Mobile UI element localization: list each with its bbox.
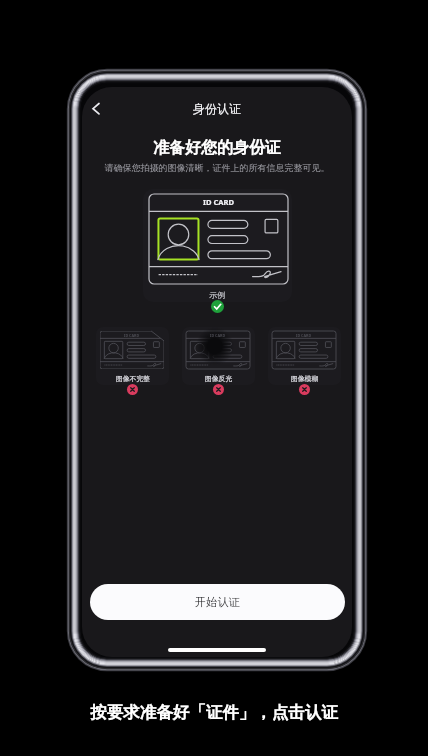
button[interactable]: ID CARD (182, 327, 255, 385)
button[interactable]: Back (88, 100, 105, 117)
staticText: ID CARD (203, 197, 235, 207)
staticText: 身份认证 (82, 101, 352, 116)
staticText: 图像模糊 (291, 374, 319, 383)
staticText: 图像不完整 (116, 374, 150, 383)
staticText: 请确保您拍摄的图像清晰，证件上的所有信息完整可见。 (82, 162, 352, 173)
staticText: ID CARD (296, 333, 312, 338)
button[interactable]: 开始认证 (90, 584, 345, 620)
button[interactable]: ID CARD (143, 189, 292, 302)
staticText: ID CARD (124, 333, 140, 338)
staticText: 准备好您的身份证 (82, 138, 352, 158)
button[interactable]: ID CARD (96, 327, 169, 385)
staticText: 示例 (209, 290, 226, 300)
staticText: 按要求准备好「证件」，点击认证 (0, 702, 428, 723)
staticText: ID CARD (210, 333, 226, 338)
staticText: 图像反光 (205, 374, 233, 383)
button[interactable]: ID CARD (268, 327, 341, 385)
staticText: 开始认证 (195, 595, 240, 609)
